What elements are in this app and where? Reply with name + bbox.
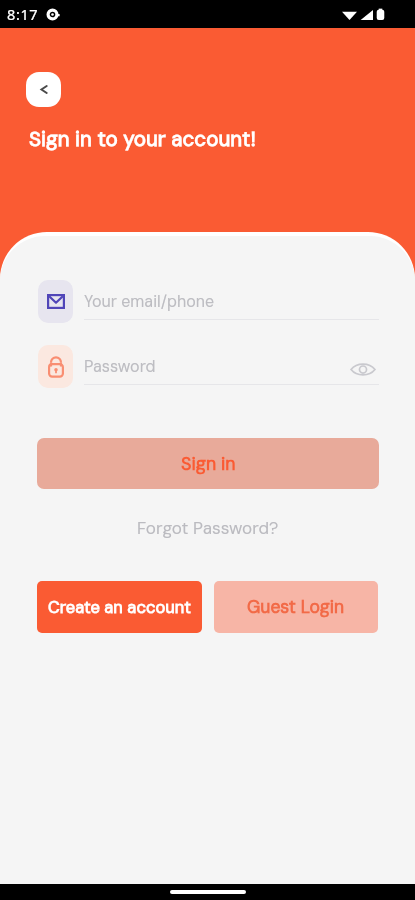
staticText: Password <box>84 356 156 377</box>
button[interactable]: Create an account <box>37 581 202 633</box>
staticText: Sign in to your account! <box>29 126 256 153</box>
staticText: Guest Login <box>247 596 345 619</box>
button[interactable]: Forgot Password? <box>125 513 291 543</box>
staticText: Your email/phone <box>84 291 215 312</box>
button[interactable]: Back <box>26 72 61 107</box>
button[interactable]: Sign in <box>37 438 379 489</box>
staticText: 8:17 <box>7 4 39 24</box>
staticText: Sign in <box>181 452 236 475</box>
staticText: Forgot Password? <box>137 517 279 539</box>
button[interactable]: Show password <box>347 353 379 385</box>
button[interactable]: Guest Login <box>214 581 378 633</box>
staticText: Create an account <box>48 597 192 618</box>
